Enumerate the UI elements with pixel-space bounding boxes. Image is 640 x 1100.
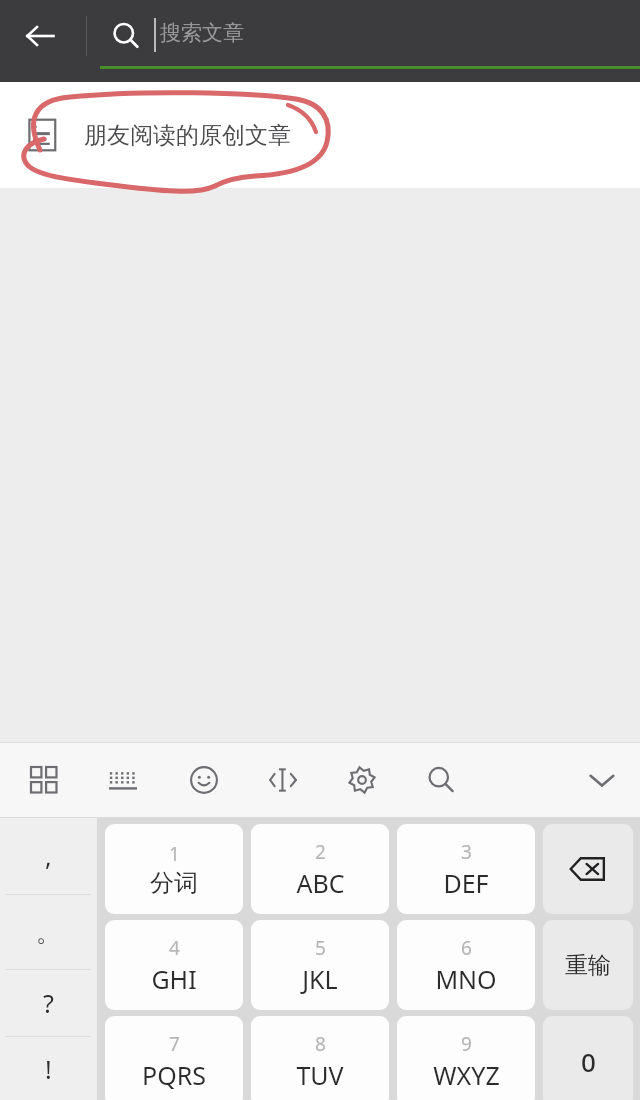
button[interactable]: Backspace — [543, 824, 633, 914]
button[interactable]: 重输 — [543, 920, 633, 1010]
staticText: 分词 — [150, 868, 198, 898]
staticText: 9 — [461, 1031, 472, 1057]
staticText: 8 — [315, 1031, 326, 1057]
button[interactable]: 朋友阅读的原创文章 — [0, 82, 640, 188]
button[interactable]: Hide keyboard — [580, 758, 624, 802]
staticText: 1 — [169, 841, 180, 867]
staticText: , — [45, 839, 52, 873]
staticText: 5 — [315, 935, 326, 961]
button[interactable]: Keyboard — [101, 758, 145, 802]
button[interactable]: 3 — [397, 824, 535, 914]
button[interactable]: Back — [8, 4, 72, 68]
staticText: PQRS — [142, 1058, 206, 1092]
button[interactable]: 5 — [251, 920, 389, 1010]
button[interactable]: 1 — [105, 824, 243, 914]
staticText: TUV — [296, 1058, 344, 1092]
staticText: 6 — [461, 935, 472, 961]
staticText: 2 — [315, 839, 326, 865]
staticText: 0 — [581, 1044, 596, 1079]
button[interactable]: 6 — [397, 920, 535, 1010]
staticText: DEF — [443, 866, 489, 900]
button[interactable]: Keyboard layouts — [22, 758, 66, 802]
button[interactable]: , — [0, 818, 97, 894]
button[interactable]: 。 — [0, 895, 97, 969]
button[interactable]: 4 — [105, 920, 243, 1010]
staticText: ABC — [296, 866, 345, 900]
button[interactable]: 9 — [397, 1016, 535, 1100]
button[interactable]: 0 — [543, 1016, 633, 1100]
button[interactable]: 8 — [251, 1016, 389, 1100]
button[interactable]: Search — [104, 14, 148, 58]
staticText: MNO — [435, 962, 497, 996]
button[interactable]: Move cursor — [261, 758, 305, 802]
button[interactable]: ? — [0, 970, 97, 1036]
staticText: GHI — [151, 962, 197, 996]
staticText: 重输 — [565, 951, 611, 980]
staticText: ! — [45, 1052, 52, 1086]
button[interactable]: ! — [0, 1037, 97, 1100]
staticText: WXYZ — [433, 1058, 500, 1092]
staticText: 朋友阅读的原创文章 — [84, 121, 291, 150]
staticText: JKL — [302, 962, 338, 996]
button[interactable]: Emoji — [182, 758, 226, 802]
staticText: ? — [43, 986, 54, 1020]
staticText: 4 — [169, 935, 180, 961]
staticText: 。 — [36, 917, 61, 948]
button[interactable]: 7 — [105, 1016, 243, 1100]
button[interactable]: Search — [419, 758, 463, 802]
button[interactable]: Settings — [340, 758, 384, 802]
staticText: 7 — [169, 1031, 180, 1057]
staticText: 3 — [461, 839, 472, 865]
staticText: 搜索文章 — [160, 20, 244, 46]
button[interactable]: 2 — [251, 824, 389, 914]
